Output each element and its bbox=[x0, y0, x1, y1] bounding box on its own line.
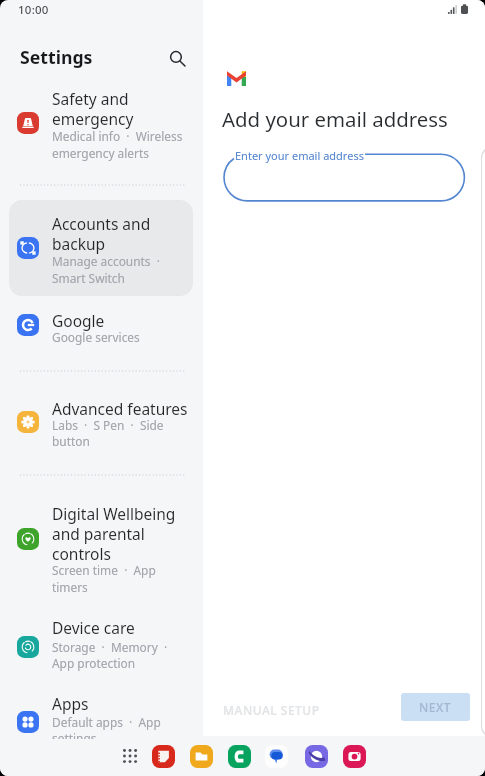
staticText: NEXT bbox=[419, 699, 452, 715]
staticText: Labs · S Pen · Side bbox=[52, 417, 164, 433]
staticText: Storage · Memory · bbox=[52, 639, 168, 655]
staticText: Device care bbox=[52, 617, 135, 638]
staticText: Advanced features bbox=[52, 398, 188, 419]
staticText: 10:00 bbox=[18, 2, 49, 18]
staticText: MANUAL SETUP bbox=[223, 702, 320, 718]
button[interactable] bbox=[0, 612, 203, 680]
button[interactable]: Camera bbox=[338, 740, 370, 772]
staticText: Manage accounts · bbox=[52, 253, 160, 269]
staticText: backup bbox=[52, 233, 106, 254]
staticText: Default apps · App bbox=[52, 714, 161, 730]
button[interactable]: Settings bbox=[14, 44, 114, 72]
staticText: emergency alerts bbox=[52, 145, 149, 161]
button[interactable]: Messages bbox=[260, 740, 292, 772]
button[interactable]: Internet bbox=[300, 740, 332, 772]
button[interactable]: NEXT bbox=[401, 693, 470, 721]
staticText: Google services bbox=[52, 329, 140, 345]
button[interactable] bbox=[0, 688, 203, 736]
staticText: Accounts and bbox=[52, 213, 151, 234]
button[interactable]: My Files bbox=[185, 740, 217, 772]
staticText: Google bbox=[52, 310, 105, 331]
staticText: Settings bbox=[20, 45, 93, 69]
staticText: settings bbox=[52, 730, 97, 746]
staticText: and parental bbox=[52, 523, 145, 544]
button[interactable]: Phone bbox=[223, 740, 255, 772]
staticText: Enter your email address bbox=[235, 148, 364, 163]
staticText: timers bbox=[52, 579, 88, 595]
button[interactable]: All apps bbox=[114, 740, 146, 772]
staticText: Safety and bbox=[52, 88, 129, 109]
staticText: controls bbox=[52, 543, 111, 564]
staticText: emergency bbox=[52, 108, 134, 129]
staticText: Digital Wellbeing bbox=[52, 503, 176, 524]
button[interactable] bbox=[0, 304, 203, 356]
button[interactable] bbox=[9, 200, 193, 296]
staticText: button bbox=[52, 433, 90, 449]
button[interactable]: Samsung Notes bbox=[147, 740, 179, 772]
staticText: Screen time · App bbox=[52, 562, 156, 578]
button[interactable] bbox=[0, 82, 203, 172]
button[interactable]: Search bbox=[164, 45, 191, 72]
button[interactable]: MANUAL SETUP bbox=[217, 697, 327, 721]
staticText: App protection bbox=[52, 655, 136, 671]
staticText: Add your email address bbox=[222, 105, 448, 133]
staticText: Smart Switch bbox=[52, 270, 125, 286]
staticText: Apps bbox=[52, 693, 89, 714]
button[interactable] bbox=[0, 390, 203, 460]
button[interactable] bbox=[223, 153, 466, 202]
button[interactable] bbox=[0, 496, 203, 600]
staticText: Medical info · Wireless bbox=[52, 128, 183, 144]
